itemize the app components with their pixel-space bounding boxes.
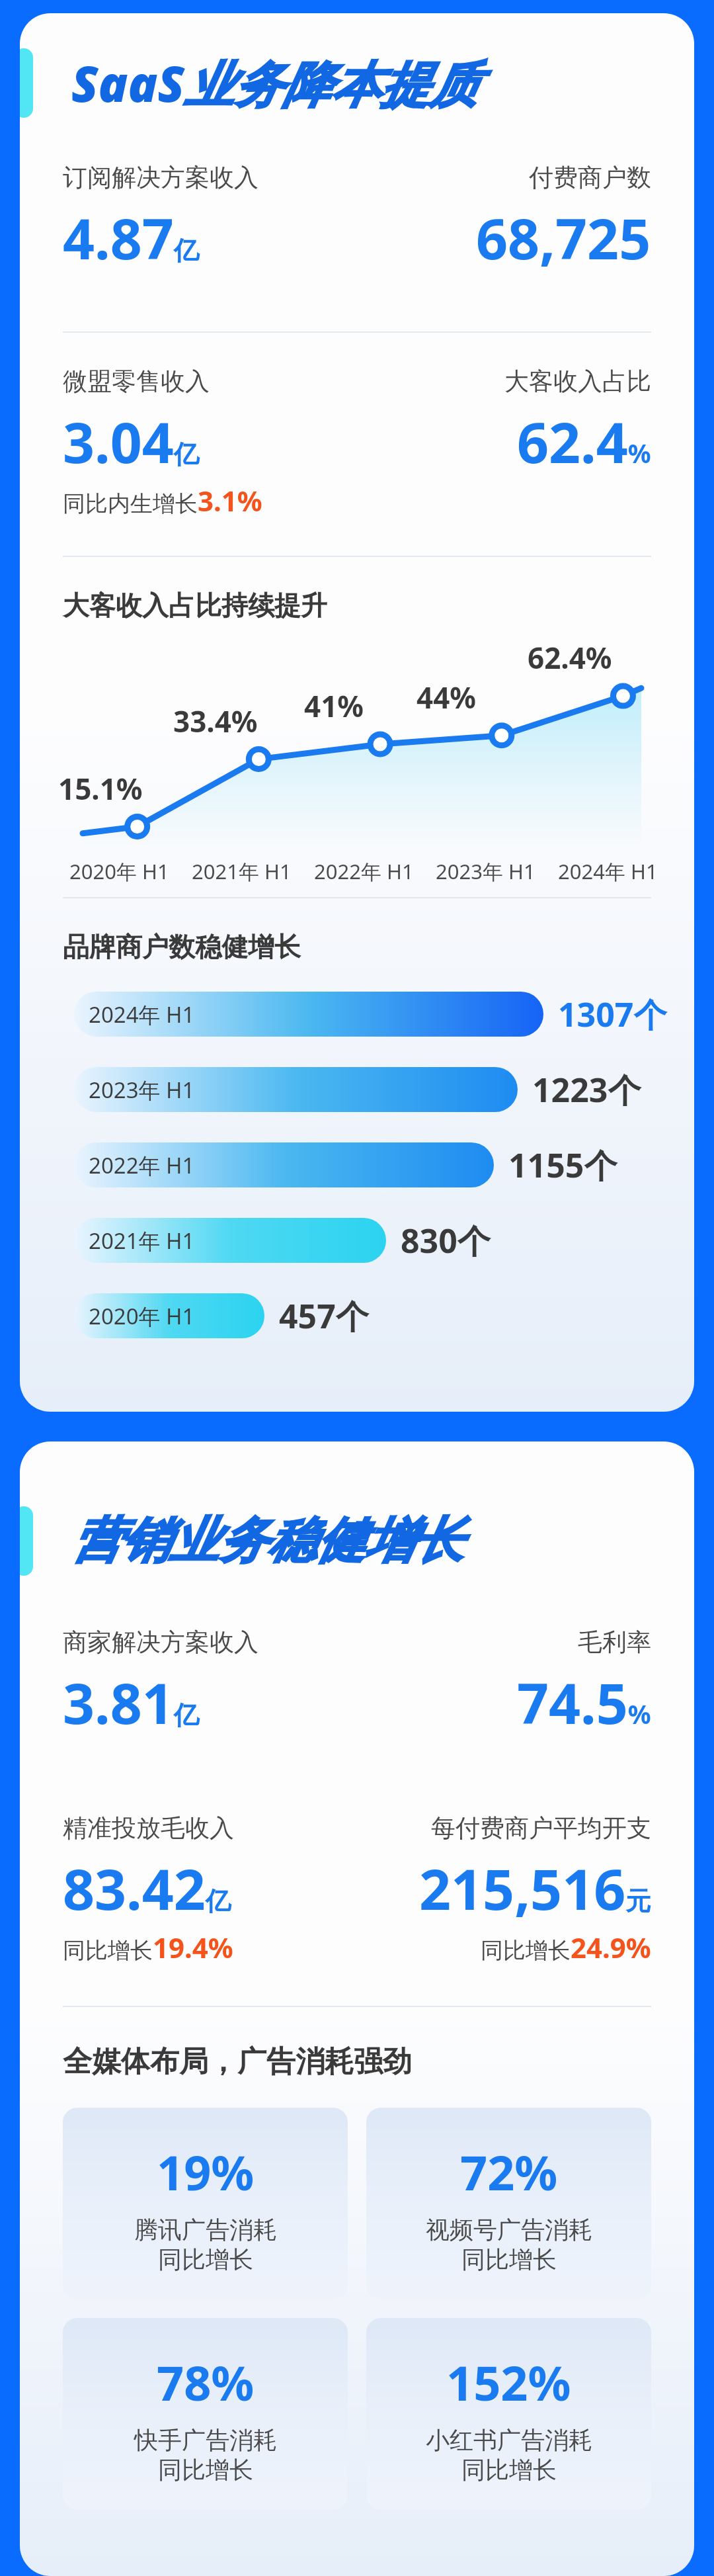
staticText: 1223个: [532, 1067, 641, 1112]
staticText: 全媒体布局，广告消耗强劲: [63, 2043, 412, 2080]
staticText: 15.1%: [58, 769, 143, 808]
button[interactable]: 2023年 H1: [74, 1066, 668, 1113]
staticText: 同比增长: [461, 2245, 557, 2274]
staticText: 每付费商户平均开支: [431, 1813, 651, 1844]
staticText: 快手广告消耗: [134, 2425, 277, 2455]
staticText: 小红书广告消耗: [426, 2425, 592, 2455]
staticText: 41%: [304, 686, 364, 726]
staticText: 2024年 H1: [558, 857, 658, 885]
staticText: 品牌商户数稳健增长: [63, 930, 301, 963]
button[interactable]: 2020年 H1: [74, 1293, 668, 1339]
staticText: 1155个: [508, 1142, 617, 1187]
staticText: 19%: [157, 2139, 255, 2204]
staticText: 457个: [279, 1293, 369, 1338]
staticText: 同比增长: [158, 2245, 253, 2274]
staticText: SaaS业务降本提质: [71, 50, 478, 116]
staticText: 付费商户数: [529, 162, 651, 193]
staticText: 同比增长24.9%: [481, 1928, 651, 1966]
button[interactable]: 19%: [63, 2108, 348, 2299]
staticText: 商家解决方案收入: [63, 1627, 258, 1658]
staticText: 微盟零售收入: [63, 366, 210, 397]
staticText: 2020年 H1: [69, 857, 169, 885]
staticText: 订阅解决方案收入: [63, 162, 258, 193]
staticText: 精准投放毛收入: [63, 1813, 234, 1844]
staticText: 3.04亿: [63, 404, 200, 479]
staticText: 3.81亿: [63, 1664, 200, 1740]
staticText: 62.4%: [517, 404, 651, 479]
staticText: 营销业务稳健增长: [71, 1510, 463, 1572]
staticText: 44%: [416, 677, 477, 717]
staticText: 152%: [446, 2350, 571, 2415]
button[interactable]: 152%: [366, 2318, 651, 2510]
staticText: 78%: [157, 2350, 255, 2415]
staticText: 毛利率: [578, 1627, 651, 1658]
staticText: 62.4%: [528, 638, 612, 677]
staticText: 72%: [460, 2139, 558, 2204]
button[interactable]: 2024年 H1: [74, 991, 668, 1037]
staticText: 2022年 H1: [314, 857, 414, 885]
staticText: 2022年 H1: [89, 1150, 195, 1180]
staticText: 1307个: [558, 992, 667, 1037]
staticText: 同比增长: [461, 2455, 557, 2485]
button[interactable]: 78%: [63, 2318, 348, 2510]
staticText: 74.5%: [517, 1664, 651, 1740]
staticText: 同比内生增长3.1%: [63, 482, 262, 519]
staticText: 同比增长: [158, 2455, 253, 2485]
staticText: 腾讯广告消耗: [134, 2215, 277, 2245]
button[interactable]: 2021年 H1: [74, 1217, 668, 1264]
staticText: 2021年 H1: [89, 1226, 195, 1256]
staticText: 68,725: [476, 200, 651, 275]
staticText: 4.87亿: [63, 200, 200, 275]
staticText: 33.4%: [173, 701, 258, 741]
staticText: 2021年 H1: [192, 857, 292, 885]
staticText: 2023年 H1: [89, 1075, 195, 1105]
staticText: 大客收入占比: [504, 366, 651, 397]
staticText: 2024年 H1: [89, 1000, 195, 1029]
button[interactable]: 72%: [366, 2108, 651, 2299]
staticText: 2020年 H1: [89, 1301, 195, 1331]
staticText: 83.42亿: [63, 1850, 231, 1926]
staticText: 830个: [401, 1218, 491, 1263]
staticText: 视频号广告消耗: [426, 2215, 592, 2245]
staticText: 同比增长19.4%: [63, 1928, 233, 1966]
button[interactable]: 2022年 H1: [74, 1142, 668, 1188]
staticText: 大客收入占比持续提升: [63, 589, 327, 622]
staticText: 215,516元: [419, 1850, 651, 1926]
staticText: 2023年 H1: [436, 857, 535, 885]
